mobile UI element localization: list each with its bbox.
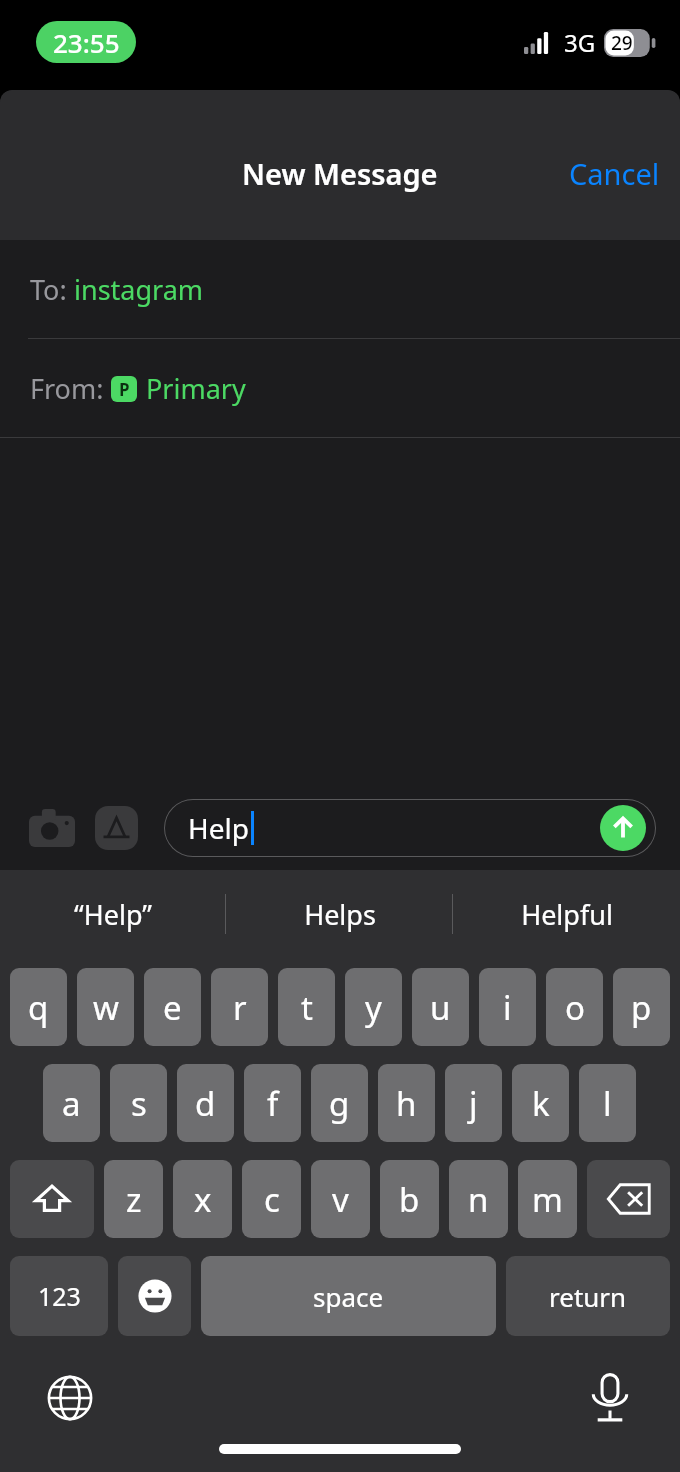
button[interactable]: n <box>449 1160 508 1238</box>
staticText: e <box>163 985 182 1030</box>
staticText: 123 <box>38 1279 81 1313</box>
staticText: space <box>313 1279 384 1314</box>
button[interactable]: q <box>10 968 67 1046</box>
staticText: k <box>532 1081 550 1126</box>
staticText: Helps <box>304 896 376 933</box>
button[interactable]: To: <box>0 240 680 338</box>
staticText: P <box>119 378 130 401</box>
button[interactable]: e <box>144 968 201 1046</box>
staticText: Cancel <box>569 154 660 193</box>
button[interactable]: From: <box>0 339 680 437</box>
staticText: z <box>126 1177 142 1222</box>
button[interactable]: g <box>311 1064 368 1142</box>
staticText: r <box>233 985 247 1030</box>
button[interactable]: l <box>579 1064 636 1142</box>
button[interactable]: j <box>445 1064 502 1142</box>
button[interactable]: r <box>211 968 268 1046</box>
button[interactable]: App Store <box>92 800 148 856</box>
button[interactable]: c <box>242 1160 301 1238</box>
button[interactable]: t <box>278 968 335 1046</box>
button[interactable]: Switch keyboard <box>38 1366 102 1430</box>
staticText: v <box>332 1177 349 1222</box>
button[interactable]: 123 <box>10 1256 108 1336</box>
button[interactable]: p <box>613 968 670 1046</box>
staticText: p <box>631 985 652 1030</box>
staticText: q <box>28 985 49 1030</box>
staticText: Help <box>188 809 249 847</box>
button[interactable]: Camera <box>24 800 80 856</box>
staticText: g <box>329 1081 350 1126</box>
staticText: w <box>93 985 119 1030</box>
button[interactable]: x <box>173 1160 232 1238</box>
staticText: 23:55 <box>53 25 120 60</box>
staticText: j <box>469 1081 478 1126</box>
staticText: x <box>194 1177 212 1222</box>
button[interactable]: a <box>43 1064 100 1142</box>
staticText: From: <box>30 370 111 407</box>
button[interactable]: m <box>518 1160 577 1238</box>
button[interactable]: Dictation <box>578 1366 642 1430</box>
button[interactable]: space <box>201 1256 496 1336</box>
button[interactable]: z <box>104 1160 163 1238</box>
staticText: u <box>430 985 451 1030</box>
staticText: a <box>62 1081 81 1126</box>
button[interactable]: Shift <box>10 1160 94 1238</box>
button[interactable]: “Help” <box>0 870 226 958</box>
button[interactable]: i <box>479 968 536 1046</box>
button[interactable]: Backspace <box>587 1160 670 1238</box>
staticText: s <box>131 1081 147 1126</box>
button[interactable]: Cancel <box>549 144 680 203</box>
staticText: d <box>195 1081 216 1126</box>
staticText: Helpful <box>521 896 613 933</box>
staticText: New Message <box>242 154 438 193</box>
button[interactable]: Help <box>164 799 656 857</box>
staticText: f <box>267 1081 279 1126</box>
button[interactable]: return <box>506 1256 670 1336</box>
button[interactable]: Send <box>600 805 646 851</box>
button[interactable]: b <box>380 1160 439 1238</box>
staticText: 3G <box>564 26 596 59</box>
staticText: i <box>503 985 512 1030</box>
button[interactable]: d <box>177 1064 234 1142</box>
button[interactable]: Helpful <box>453 870 680 958</box>
staticText: c <box>264 1177 280 1222</box>
button[interactable]: s <box>110 1064 167 1142</box>
staticText: To: <box>30 271 74 308</box>
staticText: b <box>399 1177 420 1222</box>
button[interactable]: w <box>77 968 134 1046</box>
staticText: Primary <box>146 370 246 407</box>
staticText: t <box>301 985 313 1030</box>
staticText: instagram <box>74 271 204 308</box>
button[interactable]: u <box>412 968 469 1046</box>
staticText: 29 <box>611 30 633 56</box>
button[interactable]: f <box>244 1064 301 1142</box>
button[interactable]: Emoji <box>118 1256 191 1336</box>
button[interactable]: h <box>378 1064 435 1142</box>
button[interactable]: Helps <box>226 870 453 958</box>
staticText: n <box>468 1177 489 1222</box>
button[interactable]: k <box>512 1064 569 1142</box>
staticText: y <box>365 985 382 1030</box>
button[interactable]: v <box>311 1160 370 1238</box>
staticText: “Help” <box>74 896 152 933</box>
staticText: h <box>396 1081 417 1126</box>
button[interactable]: o <box>546 968 603 1046</box>
button[interactable]: y <box>345 968 402 1046</box>
staticText: o <box>565 985 585 1030</box>
staticText: m <box>532 1177 563 1222</box>
staticText: l <box>603 1081 612 1126</box>
staticText: return <box>549 1279 627 1314</box>
